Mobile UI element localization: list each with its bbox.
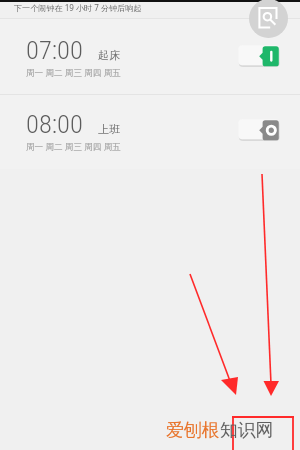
staticText: 08:00 bbox=[26, 108, 83, 139]
button[interactable]: Alarm off bbox=[236, 115, 282, 143]
button[interactable]: 07:00 bbox=[0, 20, 300, 94]
button[interactable]: Search bbox=[249, 0, 288, 38]
staticText: 知识网 bbox=[220, 419, 274, 441]
staticText: 起床 bbox=[98, 48, 120, 62]
staticText: 爱刨根 bbox=[166, 419, 220, 441]
staticText: 下一个闹钟在 19 小时 7 分钟后响起 bbox=[14, 2, 142, 13]
staticText: 上班 bbox=[98, 122, 120, 136]
button[interactable]: 08:00 bbox=[0, 94, 300, 168]
button[interactable]: Alarm on bbox=[236, 41, 282, 69]
staticText: 07:00 bbox=[26, 34, 83, 65]
staticText: 周一 周二 周三 周四 周五 bbox=[26, 141, 121, 153]
staticText: 周一 周二 周三 周四 周五 bbox=[26, 67, 121, 79]
